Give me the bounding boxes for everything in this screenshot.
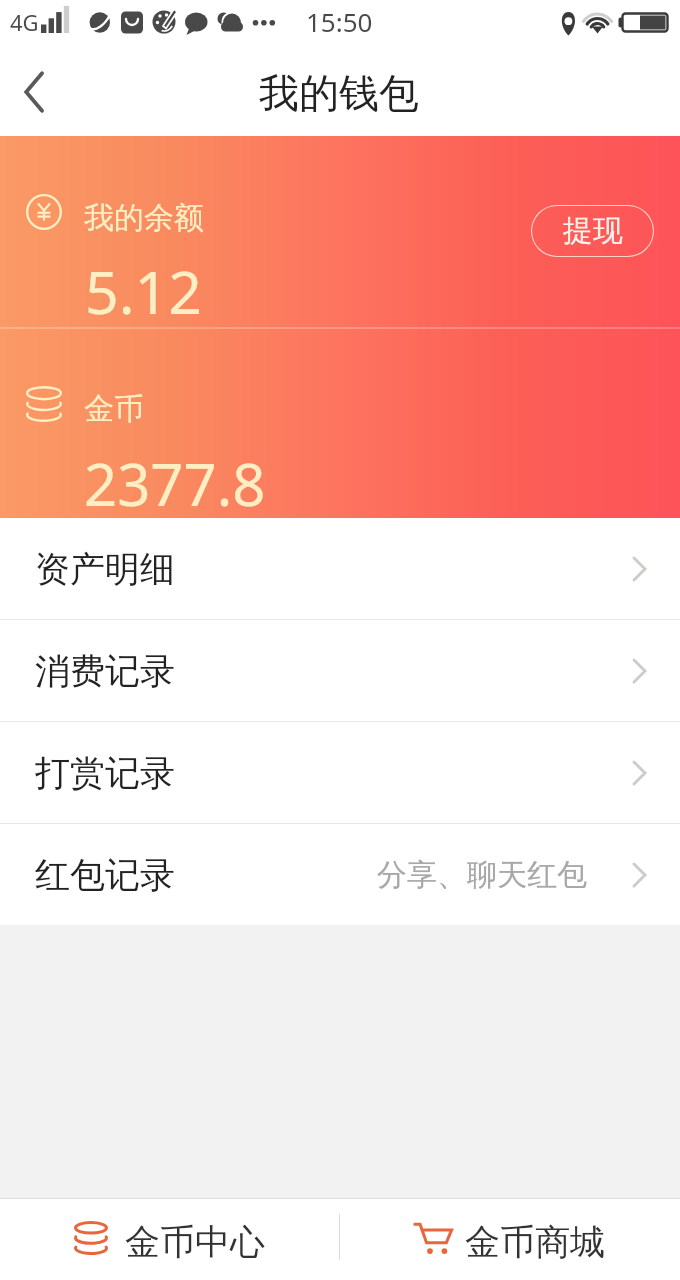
staticText: 5.12 — [85, 251, 203, 331]
staticText: 打赏记录 — [35, 751, 175, 795]
staticText: 4G — [10, 7, 39, 37]
button[interactable]: 打赏记录 — [0, 722, 680, 823]
button[interactable]: 红包记录 — [0, 824, 680, 925]
staticText: 金币商城 — [465, 1220, 605, 1264]
staticText: 分享、聊天红包 — [377, 856, 587, 894]
staticText: 金币中心 — [125, 1220, 265, 1264]
button[interactable]: 提现 — [531, 205, 654, 257]
button[interactable]: 消费记录 — [0, 620, 680, 721]
button[interactable]: 金币中心 — [0, 1199, 339, 1280]
button[interactable]: 金币商城 — [340, 1199, 680, 1280]
staticText: 提现 — [563, 212, 623, 250]
staticText: 2377.8 — [84, 444, 266, 523]
button[interactable]: 返回 — [0, 57, 70, 127]
staticText: 15:50 — [306, 4, 373, 39]
staticText: 我的钱包 — [259, 68, 419, 118]
staticText: 我的余额 — [84, 199, 204, 237]
button[interactable]: 资产明细 — [0, 518, 680, 619]
staticText: 红包记录 — [35, 853, 175, 897]
staticText: 金币 — [84, 390, 144, 428]
staticText: 资产明细 — [35, 547, 175, 591]
staticText: 消费记录 — [35, 649, 175, 693]
